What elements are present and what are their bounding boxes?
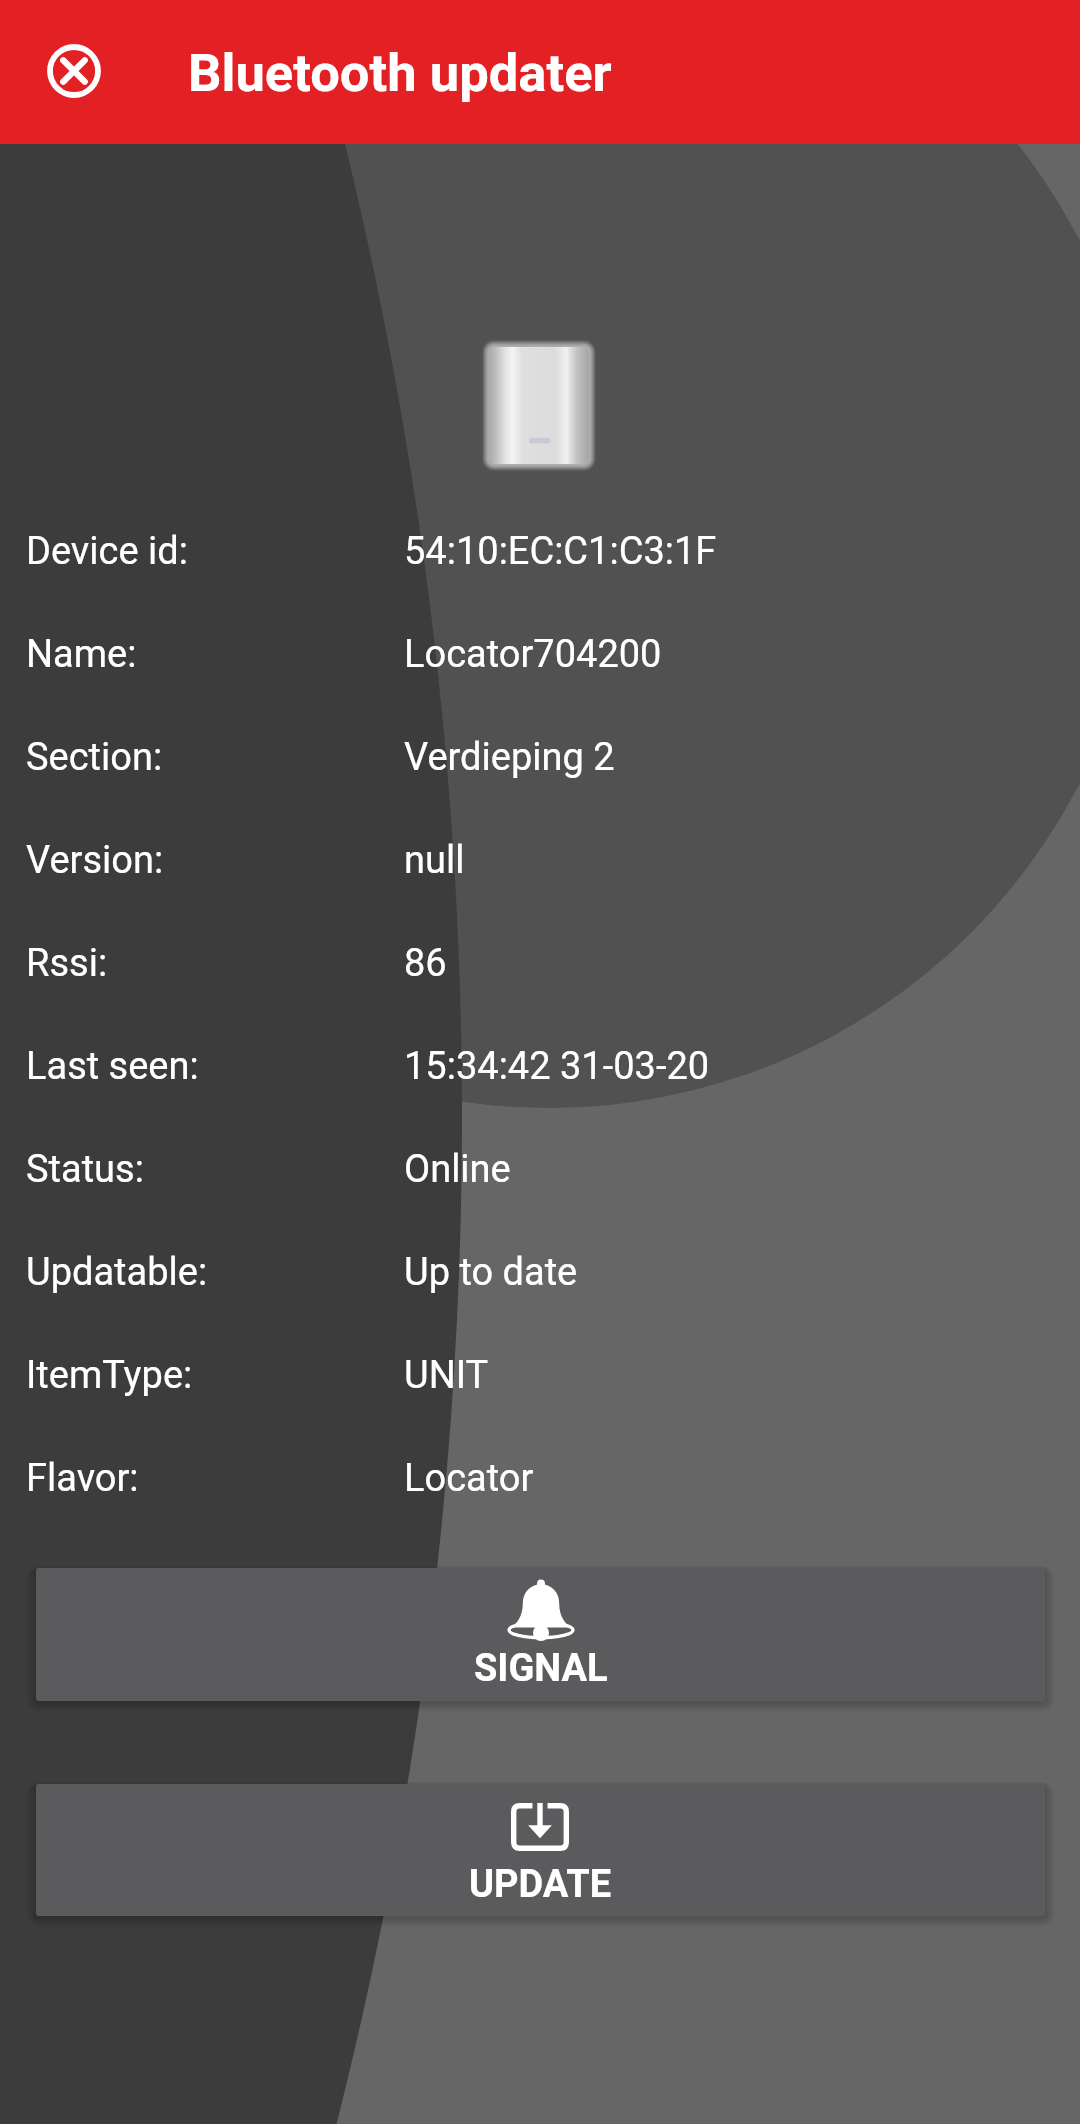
staticText: Rssi:: [26, 941, 108, 986]
staticText: Status:: [26, 1147, 144, 1192]
staticText: Section:: [26, 735, 163, 780]
staticText: Name:: [26, 632, 137, 677]
button[interactable]: UPDATE: [36, 1784, 1045, 1916]
staticText: Online: [404, 1147, 511, 1192]
staticText: Verdieping 2: [404, 735, 615, 780]
staticText: ItemType:: [26, 1353, 193, 1398]
staticText: 54:10:EC:C1:C3:1F: [404, 529, 717, 574]
staticText: Device id:: [26, 529, 188, 574]
staticText: Updatable:: [26, 1250, 208, 1295]
button[interactable]: SIGNAL: [36, 1568, 1045, 1701]
staticText: Up to date: [404, 1250, 578, 1295]
staticText: Flavor:: [26, 1456, 139, 1501]
staticText: Version:: [26, 838, 164, 883]
staticText: 86: [404, 941, 447, 986]
staticText: 15:34:42 31-03-20: [404, 1044, 710, 1089]
staticText: SIGNAL: [474, 1646, 608, 1691]
staticText: Locator704200: [404, 632, 662, 677]
staticText: Locator: [404, 1456, 534, 1501]
staticText: Last seen:: [26, 1044, 199, 1089]
staticText: UPDATE: [469, 1862, 612, 1907]
staticText: UNIT: [404, 1353, 489, 1398]
button[interactable]: Close: [0, 0, 148, 144]
staticText: null: [404, 838, 465, 883]
staticText: Bluetooth updater: [188, 42, 612, 104]
